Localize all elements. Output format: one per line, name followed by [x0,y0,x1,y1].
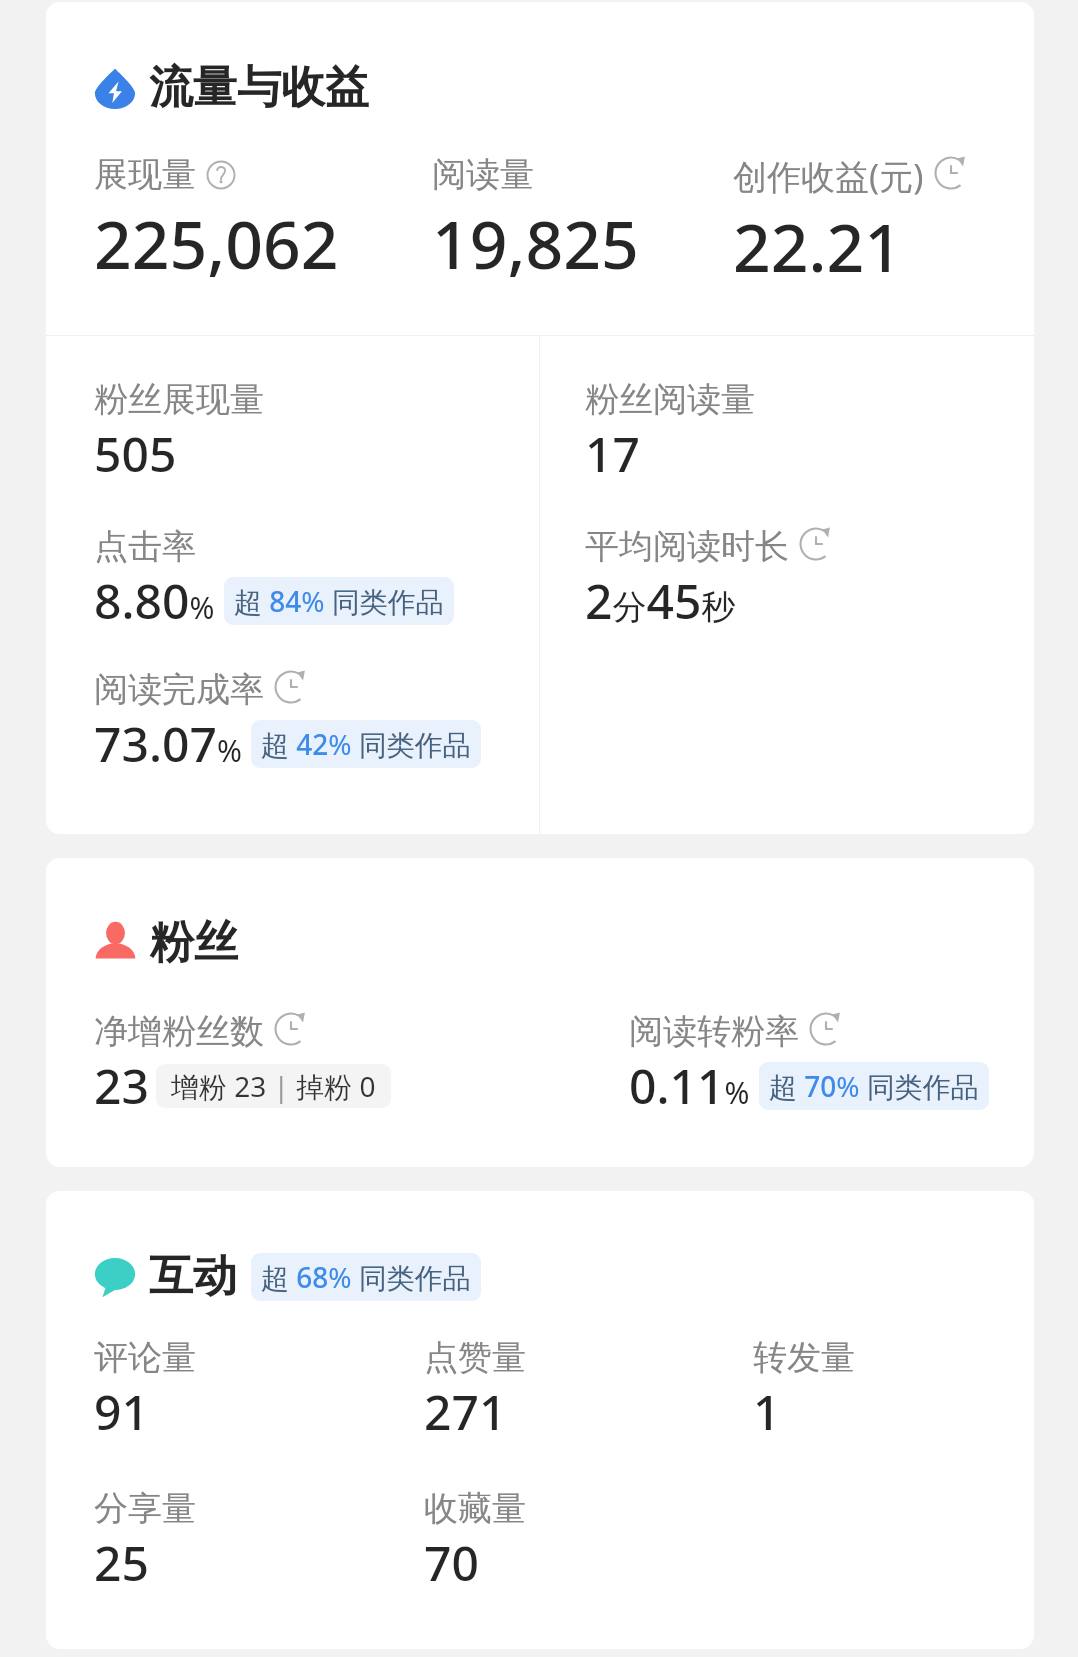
staticText: 互动 [149,1249,237,1304]
button[interactable]: 超 68% 同类作品 [251,1253,481,1301]
staticText: 阅读完成率 [94,668,264,711]
button[interactable]: 粉丝 [94,915,238,970]
button[interactable]: 阅读转粉率 [629,1010,990,1118]
staticText: 19,825 [432,198,639,288]
staticText: 91 [94,1379,149,1444]
button[interactable]: 流量与收益 [94,60,369,115]
button[interactable]: 超 84% 同类作品 [224,577,454,625]
button[interactable]: 超 70% 同类作品 [759,1062,989,1110]
other: 数据说明 [934,156,968,190]
staticText: 23 [94,1053,149,1118]
staticText: 增粉 23 | 掉粉 0 [171,1067,376,1105]
staticText: 粉丝阅读量 [585,378,755,421]
button[interactable]: 转发量 [753,1336,990,1444]
staticText: 阅读量 [432,153,534,196]
staticText: 流量与收益 [149,60,369,115]
staticText: 分享量 [94,1487,196,1530]
staticText: 超 70% 同类作品 [769,1067,979,1105]
button[interactable]: 分享量 [94,1487,424,1595]
button[interactable]: 点赞量 [424,1336,753,1444]
staticText: 净增粉丝数 [94,1010,264,1053]
staticText: 点赞量 [424,1336,526,1379]
staticText: 收藏量 [424,1487,526,1530]
staticText: 超 84% 同类作品 [234,582,444,620]
button[interactable]: 展现量 [94,153,432,288]
staticText: 1 [753,1379,781,1444]
other: 数据说明 [799,527,833,561]
staticText: 阅读转粉率 [629,1010,799,1053]
other: 数据说明 [274,1012,308,1046]
button[interactable]: 粉丝展现量 [94,378,539,486]
staticText: 25 [94,1530,149,1595]
button[interactable]: 阅读量 [432,153,733,288]
button[interactable]: 评论量 [94,1336,424,1444]
button[interactable]: 收藏量 [424,1487,753,1595]
staticText: 8.80% [94,568,215,633]
button[interactable]: 互动 [94,1249,481,1304]
staticText: 2分45秒 [585,568,736,633]
button[interactable]: 阅读完成率 [94,668,539,776]
staticText: 0.11% [629,1053,750,1118]
staticText: 粉丝展现量 [94,378,264,421]
staticText: 超 42% 同类作品 [261,725,471,763]
staticText: 创作收益(元) [733,153,924,199]
staticText: 271 [424,1379,507,1444]
staticText: 展现量 [94,153,196,196]
staticText: 粉丝 [150,915,238,970]
other: 指标说明 [206,160,236,190]
button[interactable]: 增粉 23 | 掉粉 0 [156,1064,391,1108]
button[interactable]: 创作收益(元) [733,153,990,291]
button[interactable]: 净增粉丝数 [94,1010,629,1118]
staticText: 17 [585,421,640,486]
staticText: 225,062 [94,198,339,288]
staticText: 22.21 [733,201,902,291]
staticText: 505 [94,421,177,486]
button[interactable]: 平均阅读时长 [585,525,1034,633]
staticText: 70 [424,1530,479,1595]
staticText: 平均阅读时长 [585,525,789,568]
staticText: 73.07% [94,711,242,776]
button[interactable]: 点击率 [94,525,539,633]
staticText: 超 68% 同类作品 [261,1258,471,1296]
staticText: 转发量 [753,1336,855,1379]
button[interactable]: 超 42% 同类作品 [251,720,481,768]
other: 数据说明 [274,670,308,704]
other: 数据说明 [809,1012,843,1046]
staticText: 点击率 [94,525,196,568]
button[interactable]: 粉丝阅读量 [585,378,1034,486]
staticText: 评论量 [94,1336,196,1379]
